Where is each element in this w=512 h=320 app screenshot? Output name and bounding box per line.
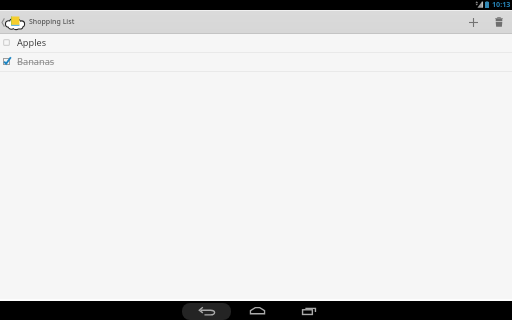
staticText: Shopping List: [29, 17, 75, 27]
staticText: Bananas: [17, 55, 55, 68]
button[interactable]: Back: [181, 301, 232, 320]
button[interactable]: Recent apps: [283, 301, 334, 320]
staticText: Apples: [17, 36, 47, 49]
staticText: 10:13: [492, 0, 511, 9]
button[interactable]: Apples: [0, 34, 512, 52]
button[interactable]: Shopping List: [0, 15, 77, 30]
button[interactable]: Bananas: [0, 53, 512, 71]
button[interactable]: Delete: [486, 11, 512, 33]
button[interactable]: Home: [232, 301, 283, 320]
button[interactable]: Add item: [460, 11, 486, 33]
